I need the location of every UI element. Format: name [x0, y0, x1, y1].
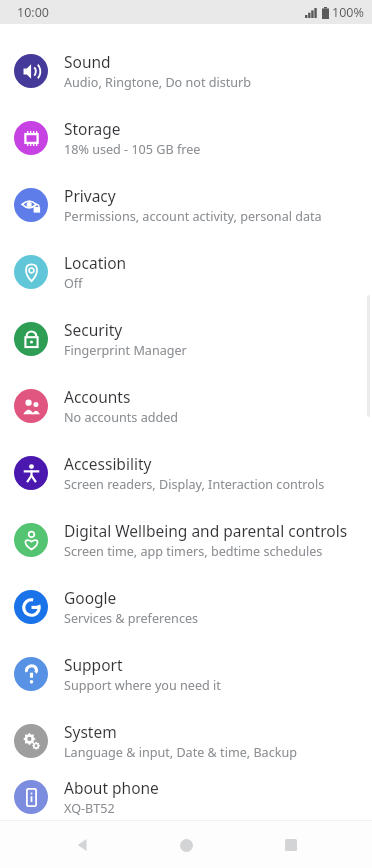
staticText: Location — [64, 252, 127, 273]
button[interactable]: Accessibility — [0, 439, 372, 506]
button[interactable]: Storage — [0, 104, 372, 171]
staticText: Language & input, Date & time, Backup — [64, 744, 297, 761]
button[interactable]: Back — [59, 822, 105, 868]
staticText: XQ-BT52 — [64, 800, 115, 817]
staticText: Accessibility — [64, 453, 152, 474]
staticText: Services & preferences — [64, 610, 199, 627]
staticText: Security — [64, 319, 123, 340]
staticText: Off — [64, 275, 83, 292]
staticText: Accounts — [64, 386, 131, 407]
button[interactable]: Accounts — [0, 372, 372, 439]
button[interactable]: Home — [163, 822, 209, 868]
button[interactable]: Recents — [268, 822, 314, 868]
staticText: 100% — [332, 4, 364, 21]
staticText: Sound — [64, 51, 111, 72]
staticText: Privacy — [64, 185, 116, 206]
staticText: Support where you need it — [64, 677, 221, 694]
staticText: Storage — [64, 118, 121, 139]
staticText: Permissions, account activity, personal … — [64, 208, 322, 225]
button[interactable]: Security — [0, 305, 372, 372]
button[interactable]: About phone — [0, 774, 372, 820]
button[interactable]: Privacy — [0, 171, 372, 238]
staticText: Digital Wellbeing and parental controls — [64, 520, 348, 541]
button[interactable]: System — [0, 707, 372, 774]
button[interactable]: Google — [0, 573, 372, 640]
staticText: No accounts added — [64, 409, 179, 426]
staticText: Fingerprint Manager — [64, 342, 187, 359]
button[interactable]: Location — [0, 238, 372, 305]
staticText: 10:00 — [17, 4, 49, 21]
staticText: System — [64, 721, 117, 742]
button[interactable]: Support — [0, 640, 372, 707]
staticText: Support — [64, 654, 123, 675]
staticText: Screen time, app timers, bedtime schedul… — [64, 543, 323, 560]
staticText: 18% used - 105 GB free — [64, 141, 201, 158]
staticText: Google — [64, 587, 117, 608]
button[interactable]: Sound — [0, 37, 372, 104]
staticText: Audio, Ringtone, Do not disturb — [64, 74, 252, 91]
staticText: Screen readers, Display, Interaction con… — [64, 476, 325, 493]
staticText: About phone — [64, 777, 159, 798]
button[interactable]: Digital Wellbeing and parental controls — [0, 506, 372, 573]
